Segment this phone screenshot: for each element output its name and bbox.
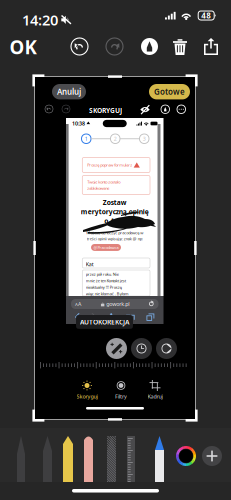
button[interactable]: Undo: [71, 38, 88, 55]
staticText: 48: [201, 10, 211, 21]
staticText: 1: [85, 135, 88, 142]
staticText: merytoryczną opinię: [81, 207, 149, 216]
staticText: 3: [143, 135, 146, 142]
button[interactable]: Markup: [161, 105, 169, 113]
staticText: 2: [114, 135, 117, 142]
button[interactable]: Filtry: [106, 380, 136, 400]
staticText: Zostaw: [103, 198, 127, 207]
staticText: SKORYGUJ: [89, 106, 122, 115]
button[interactable]: Markup: [141, 38, 158, 55]
staticText: OK: [9, 35, 36, 59]
staticText: treści opinii wpisując znak @ np:: [87, 236, 143, 241]
staticText: Kadruj: [147, 393, 162, 400]
staticText: Twoje konto zostało: [87, 179, 120, 184]
staticText: Możesz oznaczyć pracodawcę w: [86, 230, 143, 235]
staticText: Anuluj: [57, 86, 81, 97]
button[interactable]: Gotowe: [149, 84, 190, 99]
button[interactable]: More: [177, 105, 185, 113]
button[interactable]: Undo: [45, 105, 53, 113]
button[interactable]: Anuluj: [52, 84, 86, 99]
staticText: nieaktualny !!! Proszę: [86, 284, 122, 290]
staticText: mnie że ten Kontakt jest: [86, 278, 126, 283]
button[interactable]: Skoryguj: [72, 380, 102, 400]
staticText: Kat: [86, 261, 94, 268]
staticText: więc nie kłamać . Byłam: [86, 291, 129, 296]
staticText: zablokowane: [87, 185, 109, 191]
staticText: AUTOKOREKCJA: [80, 317, 129, 326]
button[interactable]: Hide markup: [140, 106, 150, 113]
staticText: Skoryguj: [76, 393, 97, 400]
button[interactable]: Share: [204, 38, 218, 55]
button[interactable]: Delete: [173, 39, 187, 55]
staticText: 14:20: [22, 10, 58, 29]
button[interactable]: Redo: [62, 105, 70, 113]
button[interactable]: OK: [8, 37, 38, 57]
staticText: Filtry: [115, 393, 127, 400]
staticText: Gotowe: [154, 86, 185, 97]
staticText: o Adiu: [104, 216, 125, 225]
button[interactable]: Add: [202, 446, 222, 466]
button[interactable]: Auto adjust: [106, 338, 127, 359]
button[interactable]: Kadruj: [140, 380, 170, 400]
staticText: przez pół roku. Nie: [86, 271, 119, 277]
staticText: ᴀA: [75, 300, 81, 308]
button[interactable]: Brilliance: [156, 338, 177, 359]
button[interactable]: Exposure: [131, 338, 152, 359]
staticText: 10:38: [72, 120, 85, 127]
staticText: Proszę popraw formularz: [87, 162, 132, 168]
button[interactable]: Redo: [106, 38, 123, 55]
staticText: gowork.pl: [106, 300, 129, 308]
staticText: @Pracodawca: [93, 245, 118, 250]
